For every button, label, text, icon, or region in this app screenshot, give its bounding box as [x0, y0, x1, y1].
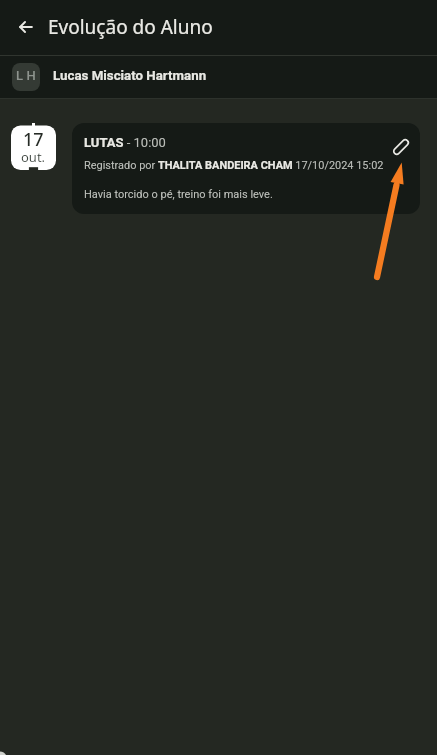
staticText: 17	[23, 127, 44, 152]
staticText: Havia torcido o pé, treino foi mais leve…	[84, 188, 273, 201]
staticText: LH	[16, 68, 40, 83]
staticText: Evolução do Aluno	[48, 14, 213, 40]
button[interactable]: LH	[0, 56, 437, 98]
button[interactable]: Back	[12, 13, 40, 41]
staticText: Lucas Misciato Hartmann	[53, 68, 207, 84]
button[interactable]: LUTAS - 10:00	[72, 123, 420, 214]
staticText: out.	[21, 148, 46, 166]
staticText: Registrado por THALITA BANDEIRA CHAM 17/…	[84, 159, 384, 172]
staticText: LUTAS - 10:00	[84, 135, 166, 150]
button[interactable]: Edit	[390, 136, 412, 158]
